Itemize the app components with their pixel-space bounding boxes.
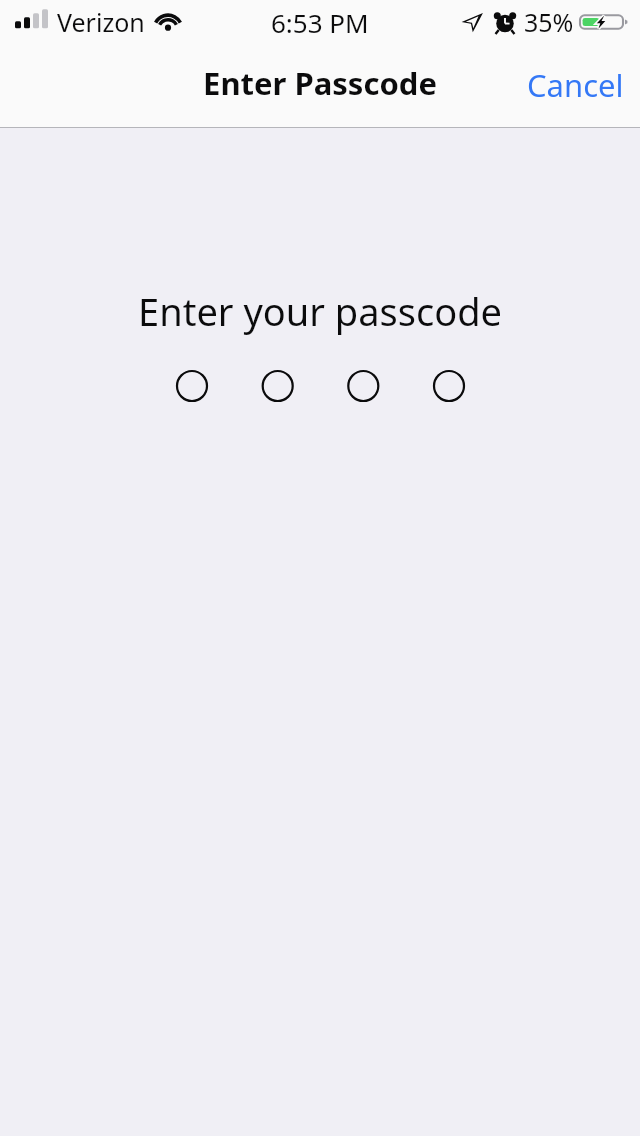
staticText: Enter Passcode bbox=[0, 62, 640, 104]
staticText: Cancel bbox=[527, 64, 624, 106]
button[interactable]: Cancel bbox=[511, 58, 640, 112]
other: Battery 35 percent charging bbox=[580, 10, 630, 34]
staticText: 35% bbox=[524, 5, 574, 39]
staticText: Enter your passcode bbox=[138, 285, 502, 337]
other: Alarm set bbox=[493, 10, 517, 34]
staticText: 6:53 PM bbox=[271, 5, 369, 40]
other: Location services active bbox=[459, 10, 485, 34]
staticText: Verizon bbox=[57, 5, 145, 39]
